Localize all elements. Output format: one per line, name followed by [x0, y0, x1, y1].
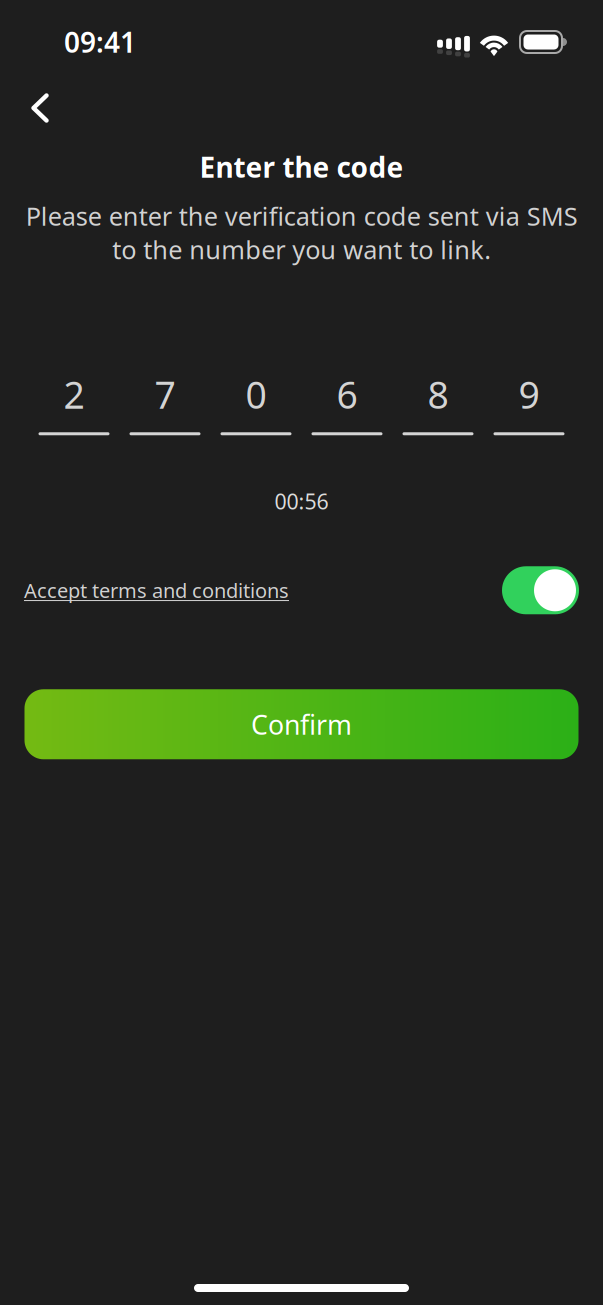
staticText: 6 — [336, 369, 357, 419]
staticText: Accept terms and conditions — [24, 577, 289, 604]
staticText: 2 — [63, 369, 84, 419]
button[interactable]: Code digit 0 — [220, 380, 291, 435]
button[interactable]: Code digit 6 — [311, 380, 382, 435]
staticText: Please enter the verification code sent … — [25, 199, 577, 266]
button[interactable]: Code digit 2 — [38, 380, 109, 435]
staticText: 9 — [518, 369, 539, 419]
staticText: 7 — [154, 369, 175, 419]
staticText: 0 — [245, 369, 266, 419]
button[interactable]: Back — [0, 73, 69, 132]
button[interactable]: Code digit 7 — [129, 380, 200, 435]
staticText: Enter the code — [199, 148, 403, 186]
staticText: Confirm — [251, 707, 352, 742]
staticText: 00:56 — [274, 487, 328, 515]
staticText: 09:41 — [64, 23, 136, 61]
staticText: 8 — [427, 369, 448, 419]
button[interactable]: Confirm — [24, 689, 578, 759]
button[interactable]: Accept terms and conditions — [24, 577, 289, 604]
button[interactable]: Code digit 8 — [402, 380, 473, 435]
button[interactable]: Code digit 9 — [493, 380, 564, 435]
button[interactable]: Accept terms and conditions — [502, 566, 579, 614]
